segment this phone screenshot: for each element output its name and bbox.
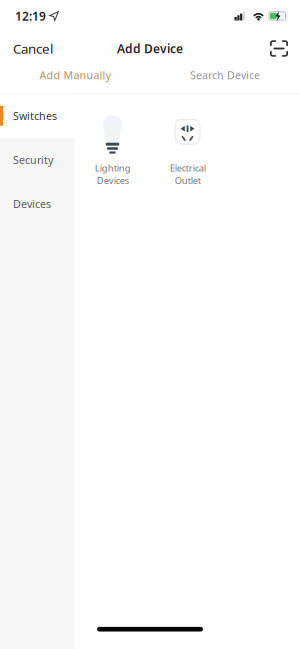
button[interactable]: Search Device: [150, 62, 300, 93]
staticText: Switches: [13, 109, 57, 123]
button[interactable]: Security: [0, 138, 75, 182]
button[interactable]: Devices: [0, 182, 75, 226]
staticText: Devices: [13, 197, 51, 211]
staticText: Search Device: [190, 68, 260, 82]
staticText: Add Device: [117, 40, 183, 56]
button[interactable]: Scan: [270, 40, 300, 57]
staticText: Cancel: [13, 40, 53, 57]
button[interactable]: Cancel: [0, 40, 53, 57]
staticText: Security: [13, 153, 53, 167]
button[interactable]: Lighting Devices: [75, 113, 150, 187]
button[interactable]: Switches: [0, 94, 75, 138]
staticText: Lighting Devices: [94, 162, 130, 187]
staticText: Electrical Outlet: [169, 162, 205, 187]
button[interactable]: Electrical Outlet: [150, 113, 225, 187]
staticText: 12:19: [15, 8, 46, 24]
button[interactable]: Add Manually: [0, 62, 150, 93]
staticText: Add Manually: [39, 68, 110, 82]
